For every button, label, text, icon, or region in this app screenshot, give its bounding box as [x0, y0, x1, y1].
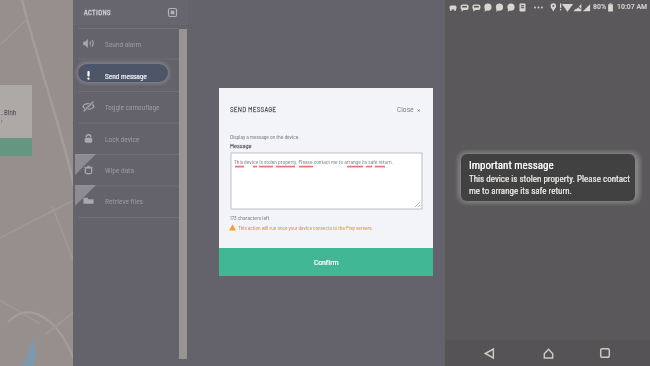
button[interactable]: Wipe data: [73, 154, 188, 185]
staticText: Lock device: [105, 134, 140, 143]
staticText: Toggle camouflage: [105, 102, 160, 111]
button[interactable]: Toggle camouflage: [73, 91, 188, 122]
staticText: Retrieve files: [105, 196, 143, 205]
staticText: This action will run once your device co…: [238, 225, 373, 231]
button[interactable]: Home: [518, 340, 578, 366]
button[interactable]: Close: [397, 104, 421, 114]
staticText: Sound alarm: [105, 39, 142, 48]
staticText: 10:07 AM: [617, 2, 648, 11]
staticText: 80%: [593, 2, 606, 11]
button[interactable]: Confirm: [219, 248, 433, 276]
button[interactable]: Lock device: [73, 123, 188, 154]
button[interactable]: Back: [459, 340, 519, 366]
button[interactable]: Important message: [461, 154, 635, 201]
button[interactable]: New action: [168, 8, 177, 17]
button[interactable]: Send message: [73, 60, 188, 91]
staticText: ×: [417, 104, 421, 114]
staticText: Message: [230, 141, 252, 149]
button[interactable]: Sound alarm: [73, 28, 188, 59]
staticText: 173 characters left: [230, 214, 270, 221]
staticText: SEND MESSAGE: [230, 105, 277, 114]
button[interactable]: Retrieve files: [73, 185, 188, 216]
staticText: This device is stolen property. Please c…: [234, 158, 393, 165]
staticText: This device is stolen property. Please c…: [469, 174, 630, 196]
staticText: Close: [397, 104, 414, 114]
staticText: . Binh: [1, 108, 17, 116]
staticText: Wipe data: [105, 165, 134, 174]
staticText: Important message: [469, 159, 554, 172]
staticText: ACTIONS: [84, 8, 112, 17]
staticText: Confirm: [314, 257, 339, 267]
button[interactable]: Recent apps: [575, 340, 635, 366]
staticText: r: [1, 117, 3, 124]
staticText: Send message: [105, 71, 147, 80]
staticText: Display a message on the device.: [230, 133, 300, 140]
